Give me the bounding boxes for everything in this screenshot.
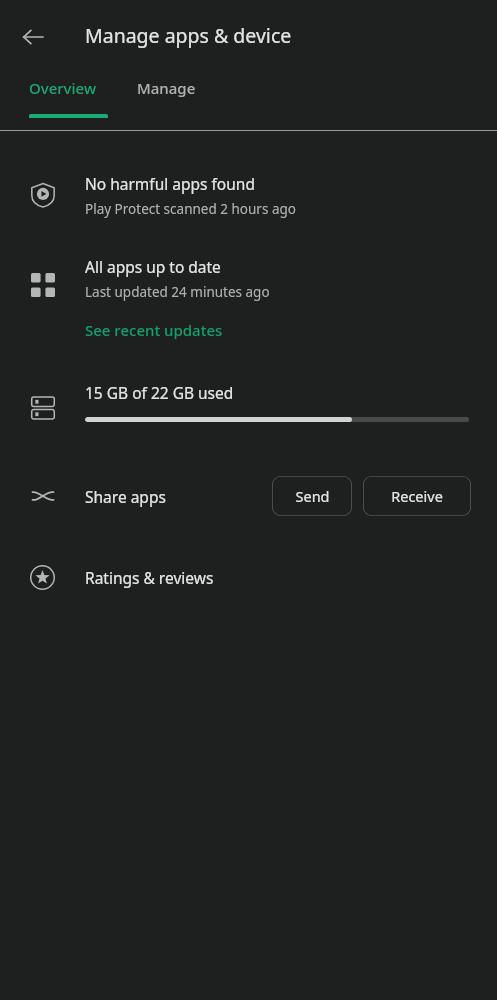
- button[interactable]: All apps up to date: [85, 256, 270, 301]
- button[interactable]: No harmful apps found: [0, 161, 497, 229]
- button[interactable]: Overview: [8, 74, 128, 130]
- button[interactable]: See recent updates: [85, 320, 223, 340]
- staticText: Overview: [29, 78, 96, 98]
- staticText: No harmful apps found: [85, 173, 255, 194]
- button[interactable]: Send: [272, 476, 352, 516]
- staticText: Receive: [391, 486, 443, 506]
- button[interactable]: Back: [12, 16, 54, 58]
- staticText: Manage: [137, 78, 196, 98]
- button[interactable]: Ratings & reviews: [0, 551, 497, 603]
- staticText: All apps up to date: [85, 256, 221, 277]
- button[interactable]: 15 GB of 22 GB used: [0, 382, 497, 434]
- staticText: Play Protect scanned 2 hours ago: [85, 200, 296, 218]
- staticText: See recent updates: [85, 320, 223, 340]
- staticText: Share apps: [85, 486, 272, 507]
- staticText: Send: [295, 486, 330, 506]
- staticText: Last updated 24 minutes ago: [85, 283, 270, 301]
- staticText: 15 GB of 22 GB used: [85, 382, 234, 403]
- staticText: Manage apps & device: [85, 22, 292, 49]
- staticText: Ratings & reviews: [85, 567, 214, 588]
- button[interactable]: Receive: [363, 476, 471, 516]
- button[interactable]: Manage: [124, 74, 224, 130]
